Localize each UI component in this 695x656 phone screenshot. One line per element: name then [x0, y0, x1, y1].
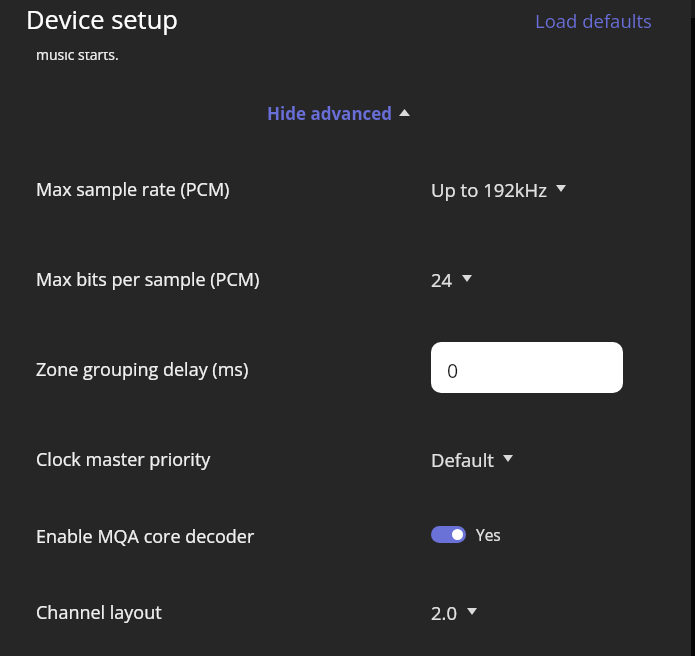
- staticText: Load defaults: [535, 8, 652, 33]
- button[interactable]: 2.0, open picker: [431, 600, 477, 625]
- staticText: 2.0: [431, 600, 458, 625]
- button[interactable]: Up to 192kHz, open picker: [431, 177, 566, 202]
- button[interactable]: Channel layout: [0, 582, 695, 642]
- button[interactable]: Hide advanced: [267, 102, 410, 124]
- staticText: Channel layout: [36, 600, 162, 625]
- staticText: 0: [447, 357, 459, 384]
- staticText: Enable MQA core decoder: [36, 524, 255, 549]
- staticText: Default: [431, 447, 494, 472]
- button[interactable]: Load defaults: [535, 8, 652, 33]
- button[interactable]: Max bits per sample (PCM): [0, 249, 695, 309]
- staticText: Yes: [476, 524, 501, 545]
- staticText: Hide advanced: [267, 102, 393, 124]
- button[interactable]: Clock master priority: [0, 429, 695, 489]
- button[interactable]: Device setup: [26, 2, 178, 37]
- staticText: Zone grouping delay (ms): [36, 357, 249, 382]
- button[interactable]: 24, open picker: [431, 267, 472, 292]
- staticText: 24: [431, 267, 453, 292]
- button[interactable]: Zone grouping delay, 0: [431, 342, 623, 393]
- button[interactable]: Zone grouping delay (ms): [0, 339, 695, 399]
- staticText: Up to 192kHz: [431, 177, 547, 202]
- staticText: music starts.: [36, 45, 119, 64]
- button[interactable]: Enable MQA core decoder, on: [431, 524, 501, 545]
- button[interactable]: Enable MQA core decoder: [0, 506, 695, 566]
- button[interactable]: Max sample rate (PCM): [0, 159, 695, 219]
- staticText: Max bits per sample (PCM): [36, 267, 260, 292]
- staticText: Device setup: [26, 2, 178, 37]
- staticText: Clock master priority: [36, 447, 211, 472]
- staticText: Max sample rate (PCM): [36, 177, 230, 202]
- button[interactable]: Default, open picker: [431, 447, 513, 472]
